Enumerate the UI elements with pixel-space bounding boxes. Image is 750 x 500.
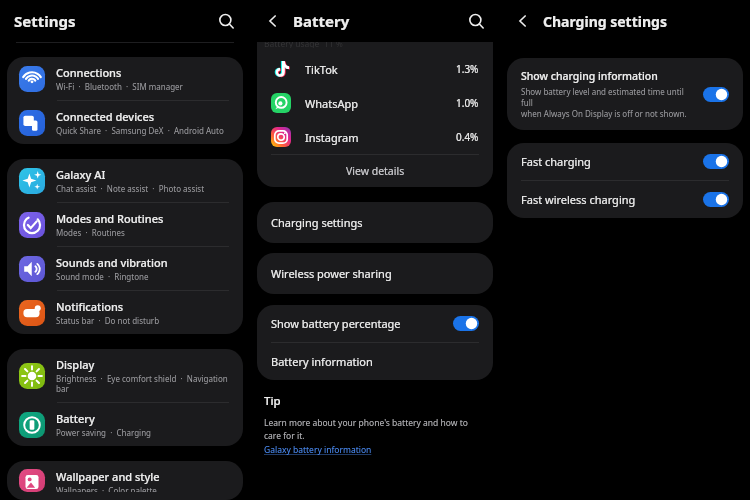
staticText: Galaxy AI — [56, 167, 106, 182]
staticText: Modes · Routines — [56, 227, 125, 238]
staticText: Display — [56, 357, 95, 372]
staticText: Wi-Fi · Bluetooth · SIM manager — [56, 81, 183, 92]
button[interactable]: Galaxy battery information — [264, 444, 372, 456]
button[interactable]: Back — [264, 12, 282, 30]
button[interactable]: Toggle on — [703, 192, 729, 207]
staticText: WhatsApp — [305, 96, 456, 111]
button[interactable]: Charging settings — [257, 202, 493, 243]
staticText: Battery — [56, 411, 95, 426]
staticText: Battery — [293, 11, 467, 31]
button[interactable]: Search — [217, 12, 236, 31]
button[interactable]: Connections — [7, 57, 243, 100]
button[interactable]: Wireless power sharing — [257, 253, 493, 294]
staticText: Show charging information — [521, 69, 658, 83]
staticText: Tip — [264, 393, 281, 409]
button[interactable]: Galaxy AI — [7, 159, 243, 202]
button[interactable]: View details — [257, 155, 493, 187]
staticText: Learn more about your phone's battery an… — [264, 417, 468, 442]
button[interactable]: Show charging information — [507, 58, 743, 130]
staticText: Sound mode · Ringtone — [56, 271, 149, 282]
staticText: Brightness · Eye comfort shield · Naviga… — [56, 373, 231, 394]
button[interactable]: Battery — [7, 403, 243, 446]
staticText: 1.0% — [456, 96, 479, 110]
button[interactable]: Search — [467, 12, 486, 31]
staticText: Fast charging — [521, 154, 703, 169]
staticText: TikTok — [305, 62, 456, 77]
button[interactable]: Toggle on — [703, 87, 729, 102]
staticText: Show battery percentage — [271, 316, 453, 331]
staticText: Charging settings — [543, 12, 667, 31]
staticText: Modes and Routines — [56, 211, 164, 226]
staticText: 0.4% — [456, 130, 479, 144]
staticText: Instagram — [305, 130, 456, 145]
staticText: Sounds and vibration — [56, 255, 168, 270]
staticText: Settings — [14, 11, 217, 31]
button[interactable]: Back — [514, 12, 532, 30]
staticText: Quick Share · Samsung DeX · Android Auto — [56, 125, 224, 136]
button[interactable]: Wallpaper and style — [7, 461, 243, 500]
button[interactable]: Toggle on — [453, 316, 479, 331]
staticText: Notifications — [56, 299, 124, 314]
staticText: Chat assist · Note assist · Photo assist — [56, 183, 205, 194]
button[interactable]: Instagram — [257, 120, 493, 154]
staticText: Charging settings — [271, 215, 363, 230]
button[interactable]: WhatsApp — [257, 86, 493, 120]
staticText: Show battery level and estimated time un… — [521, 86, 695, 119]
staticText: Wallpapers · Color palette — [56, 485, 157, 492]
staticText: Status bar · Do not disturb — [56, 315, 160, 326]
button[interactable]: Display — [7, 349, 243, 402]
staticText: Battery usage 11 % — [264, 42, 343, 48]
staticText: Fast wireless charging — [521, 192, 703, 207]
staticText: Wireless power sharing — [271, 266, 392, 281]
button[interactable]: TikTok — [257, 52, 493, 86]
button[interactable]: Modes and Routines — [7, 203, 243, 246]
staticText: View details — [346, 164, 405, 178]
button[interactable]: Fast wireless charging — [507, 181, 743, 218]
button[interactable]: Notifications — [7, 291, 243, 334]
button[interactable]: Connected devices — [7, 101, 243, 144]
button[interactable]: Fast charging — [507, 143, 743, 180]
staticText: 1.3% — [456, 62, 479, 76]
staticText: Connected devices — [56, 109, 155, 124]
staticText: Battery information — [271, 354, 373, 369]
button[interactable]: Sounds and vibration — [7, 247, 243, 290]
button[interactable]: Toggle on — [703, 154, 729, 169]
button[interactable]: Battery information — [257, 343, 493, 380]
button[interactable]: Show battery percentage — [257, 305, 493, 342]
staticText: Connections — [56, 65, 122, 80]
staticText: Wallpaper and style — [56, 469, 160, 484]
staticText: Power saving · Charging — [56, 427, 152, 438]
